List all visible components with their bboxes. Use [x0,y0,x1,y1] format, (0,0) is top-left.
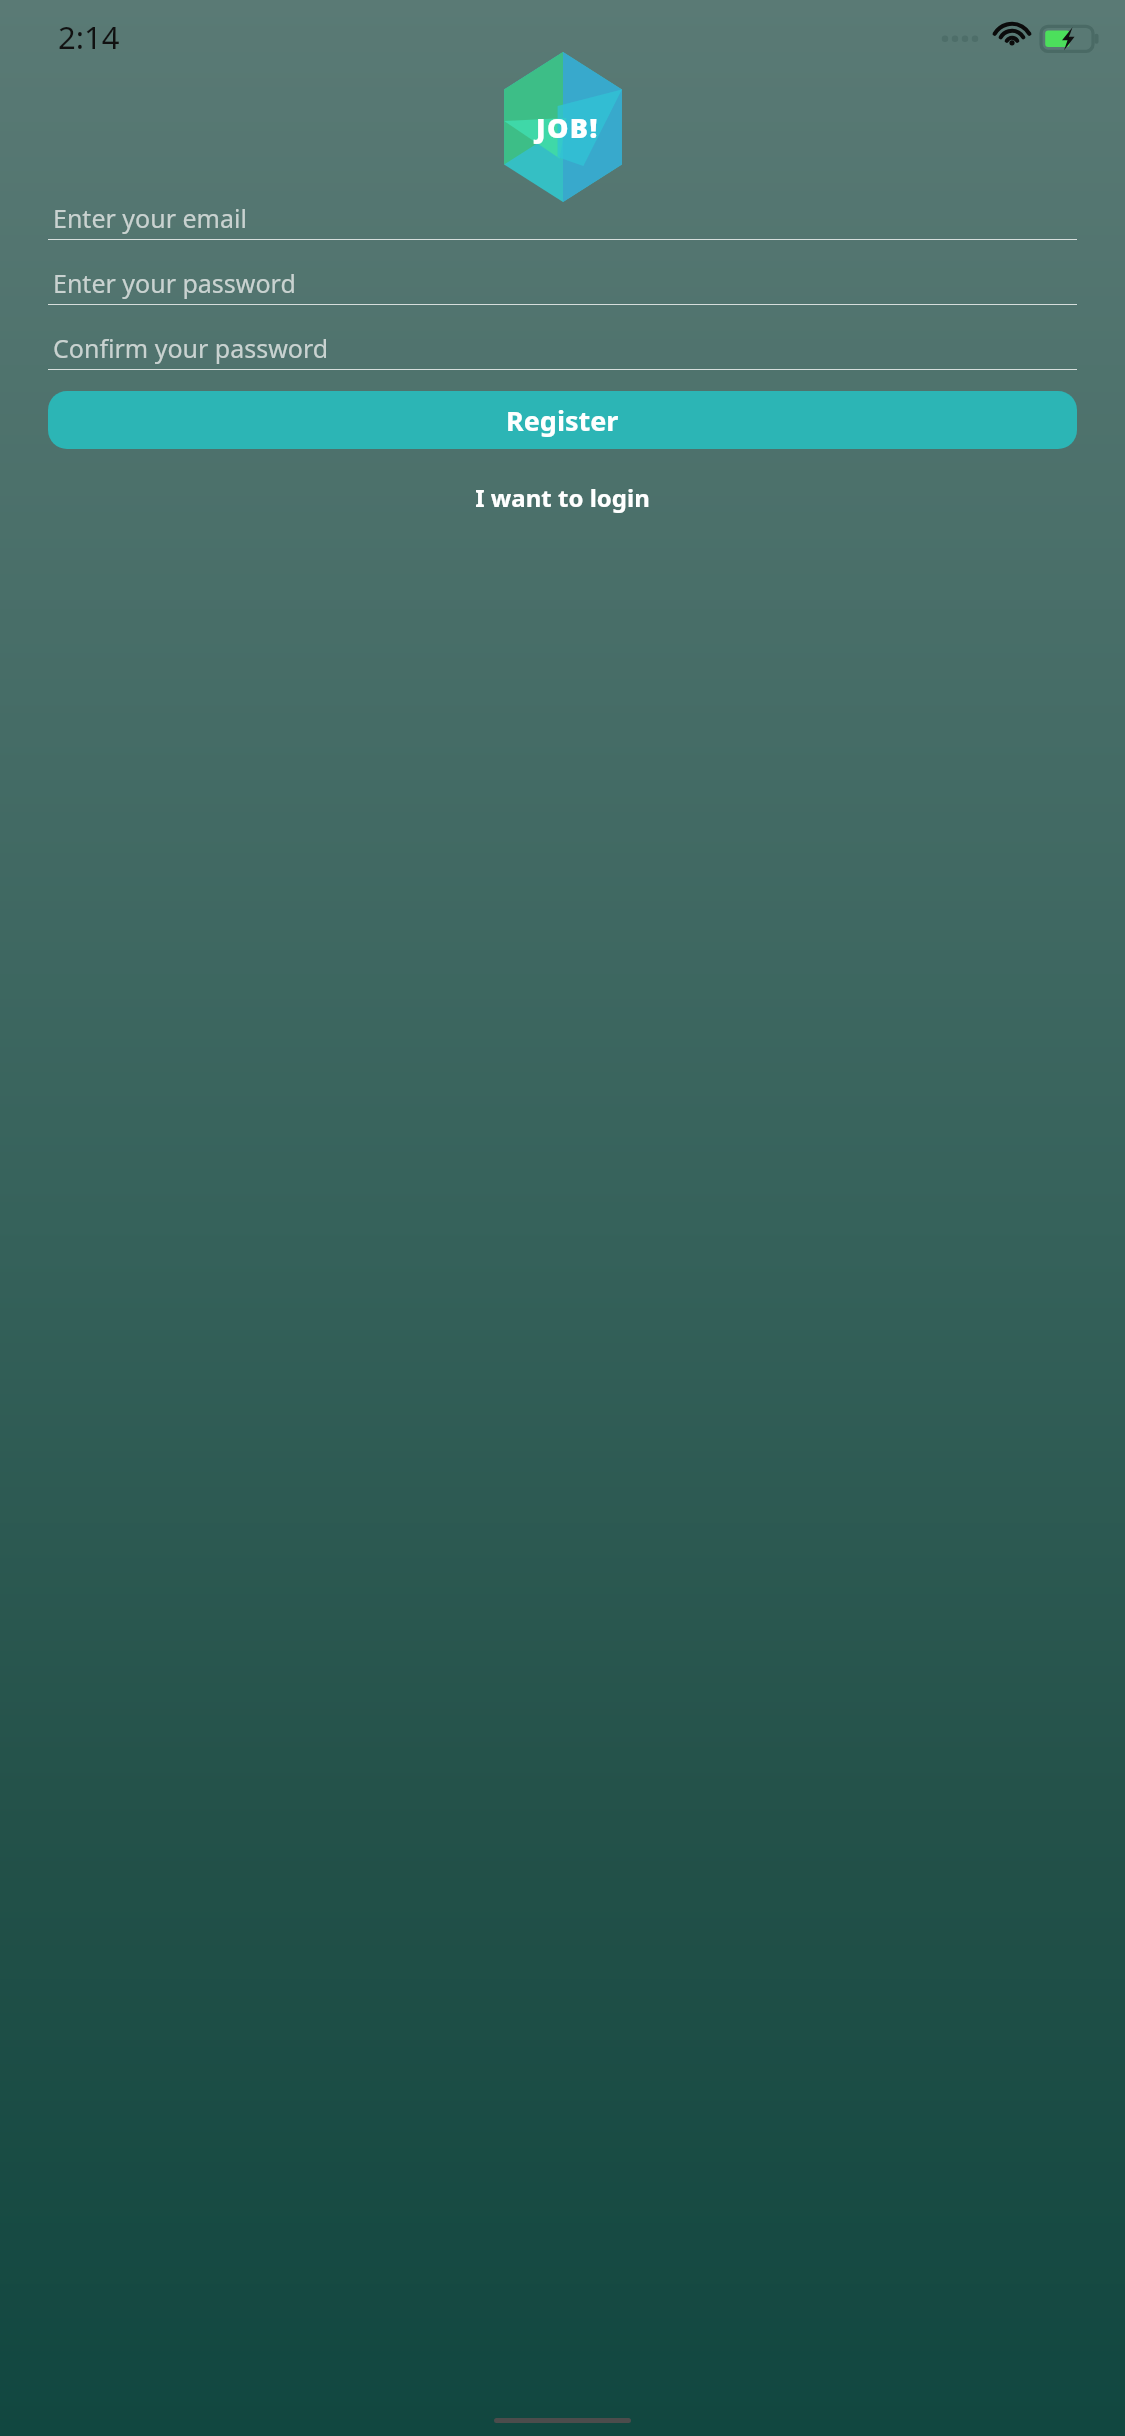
button[interactable]: Confirm your password [48,326,1077,370]
button[interactable]: Enter your email [48,196,1077,240]
staticText: 2:14 [58,16,120,58]
button[interactable]: Enter your password [48,261,1077,305]
button[interactable]: I want to login [48,473,1077,521]
button[interactable]: Register [48,391,1077,449]
staticText: Enter your email [53,201,247,235]
staticText: Enter your password [53,266,296,300]
staticText: Confirm your password [53,331,329,365]
staticText: I want to login [475,481,650,514]
staticText: JOB! [536,109,599,146]
other: Home indicator [494,2418,631,2423]
staticText: Register [506,402,619,439]
